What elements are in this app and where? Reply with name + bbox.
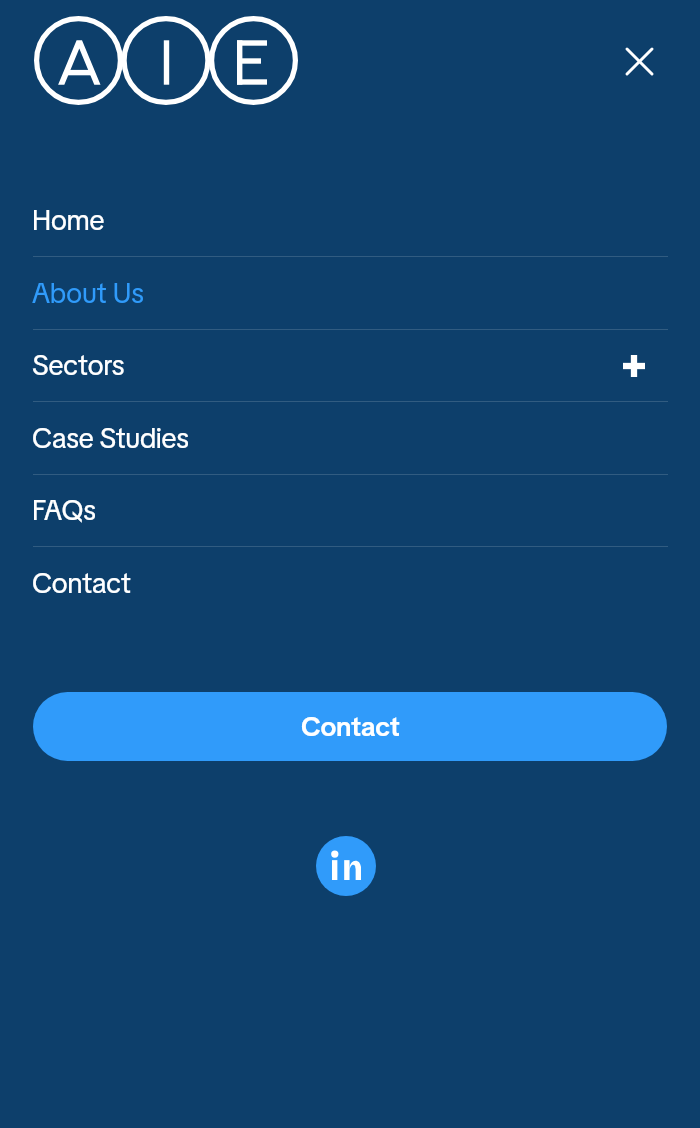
button[interactable]: LinkedIn [316,836,376,896]
staticText: Case Studies [32,420,189,457]
staticText: Contact [32,565,131,602]
button[interactable]: Close menu [615,37,663,85]
staticText: Home [32,202,105,239]
staticText: FAQs [32,492,96,529]
staticText: Contact [301,709,400,744]
button[interactable]: About Us [0,257,700,329]
staticText: About Us [32,275,144,312]
button[interactable]: AIE home [32,14,304,108]
button[interactable]: FAQs [0,475,700,546]
button[interactable]: Sectors [0,330,700,401]
button[interactable]: Expand Sectors [617,349,651,383]
staticText: Sectors [32,347,125,384]
button[interactable]: Contact [0,547,700,619]
button[interactable]: Contact [33,692,667,761]
button[interactable]: Case Studies [0,402,700,474]
button[interactable]: Home [0,184,700,256]
